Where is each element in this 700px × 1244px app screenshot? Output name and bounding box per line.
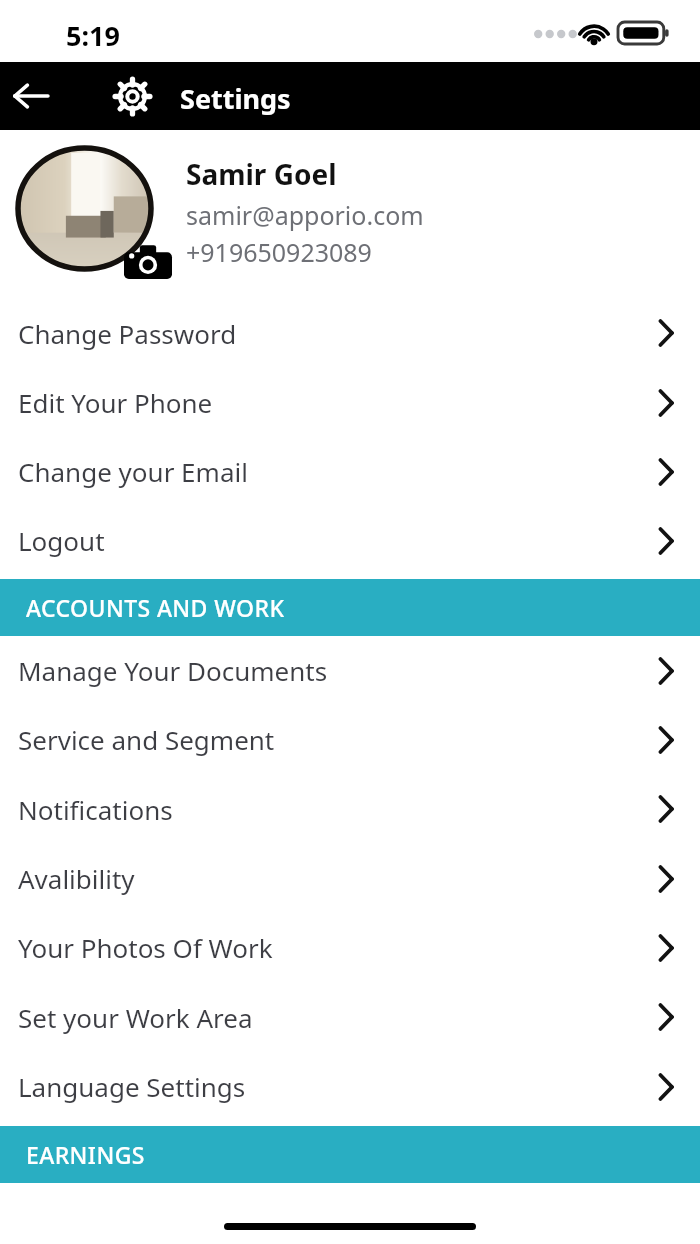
staticText: Settings [180,80,291,117]
staticText: Language Settings [18,1069,656,1104]
staticText: Change your Email [18,454,656,489]
staticText: Set your Work Area [18,1000,656,1035]
button[interactable]: Set your Work Area [0,982,700,1052]
button[interactable]: Change photo [124,243,172,279]
staticText: ACCOUNTS AND WORK [26,592,285,623]
button[interactable]: Manage Your Documents [0,636,700,705]
button[interactable]: Avalibility [0,844,700,913]
button[interactable]: Service and Segment [0,705,700,774]
button[interactable]: EARNINGS [0,1126,700,1183]
button[interactable]: Change your Email [0,437,700,506]
staticText: Service and Segment [18,722,656,757]
button[interactable]: Edit Your Phone [0,368,700,437]
button[interactable]: Notifications [0,774,700,844]
staticText: Change Password [18,316,656,351]
staticText: Samir Goel [186,155,337,193]
staticText: Manage Your Documents [18,653,656,688]
button[interactable]: Back [2,74,60,118]
staticText: Your Photos Of Work [18,930,656,965]
button[interactable]: Your Photos Of Work [0,913,700,982]
staticText: 5:19 [66,17,120,54]
staticText: EARNINGS [26,1139,145,1170]
staticText: Avalibility [18,861,656,896]
button[interactable]: Settings [108,74,156,118]
staticText: Notifications [18,792,656,827]
button[interactable]: Change Password [0,298,700,368]
staticText: +919650923089 [186,235,372,269]
button[interactable]: Logout [0,506,700,575]
button[interactable]: Language Settings [0,1052,700,1121]
button[interactable]: ACCOUNTS AND WORK [0,579,700,636]
staticText: samir@apporio.com [186,198,424,232]
staticText: Edit Your Phone [18,385,656,420]
staticText: Logout [18,523,656,558]
